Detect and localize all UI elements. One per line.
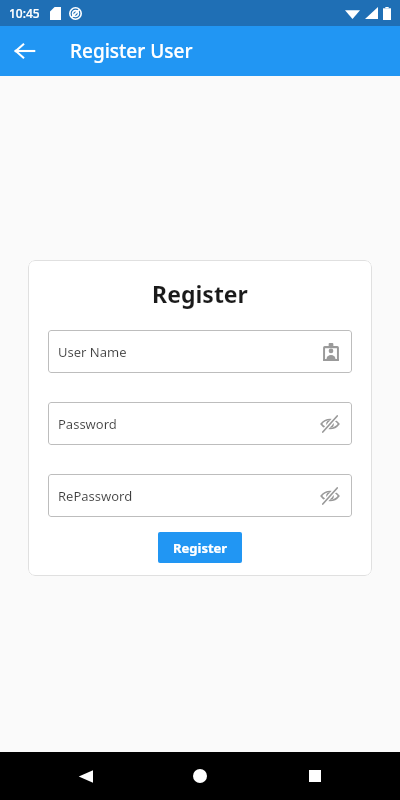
button[interactable]: Toggle password visibility [318,484,342,508]
button[interactable]: Password [48,402,352,445]
staticText: Register User [70,38,193,64]
button[interactable]: Back [55,752,115,800]
button[interactable]: Recent apps [285,752,345,800]
button[interactable]: Back [0,26,50,76]
button[interactable]: User Name [48,330,352,373]
staticText: 10:45 [9,5,40,21]
staticText: Register [173,539,228,557]
staticText: RePassword [58,487,133,505]
button[interactable]: Select contact [320,341,342,363]
button[interactable]: Register [158,532,242,563]
button[interactable]: RePassword [48,474,352,517]
staticText: Register [48,278,352,309]
staticText: User Name [58,343,127,361]
button[interactable]: Home [170,752,230,800]
button[interactable]: Toggle password visibility [318,412,342,436]
staticText: Password [58,415,117,433]
